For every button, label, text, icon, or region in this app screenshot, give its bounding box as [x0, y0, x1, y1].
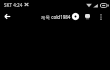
- button[interactable]: More options: [95, 11, 106, 22]
- button[interactable]: 제목 cold1984: [41, 11, 79, 22]
- staticText: SKT 4:24: [4, 2, 23, 8]
- button[interactable]: Cast to device: [82, 11, 92, 21]
- staticText: 제목 cold1984: [41, 14, 71, 20]
- button[interactable]: Back: [0, 9, 14, 23]
